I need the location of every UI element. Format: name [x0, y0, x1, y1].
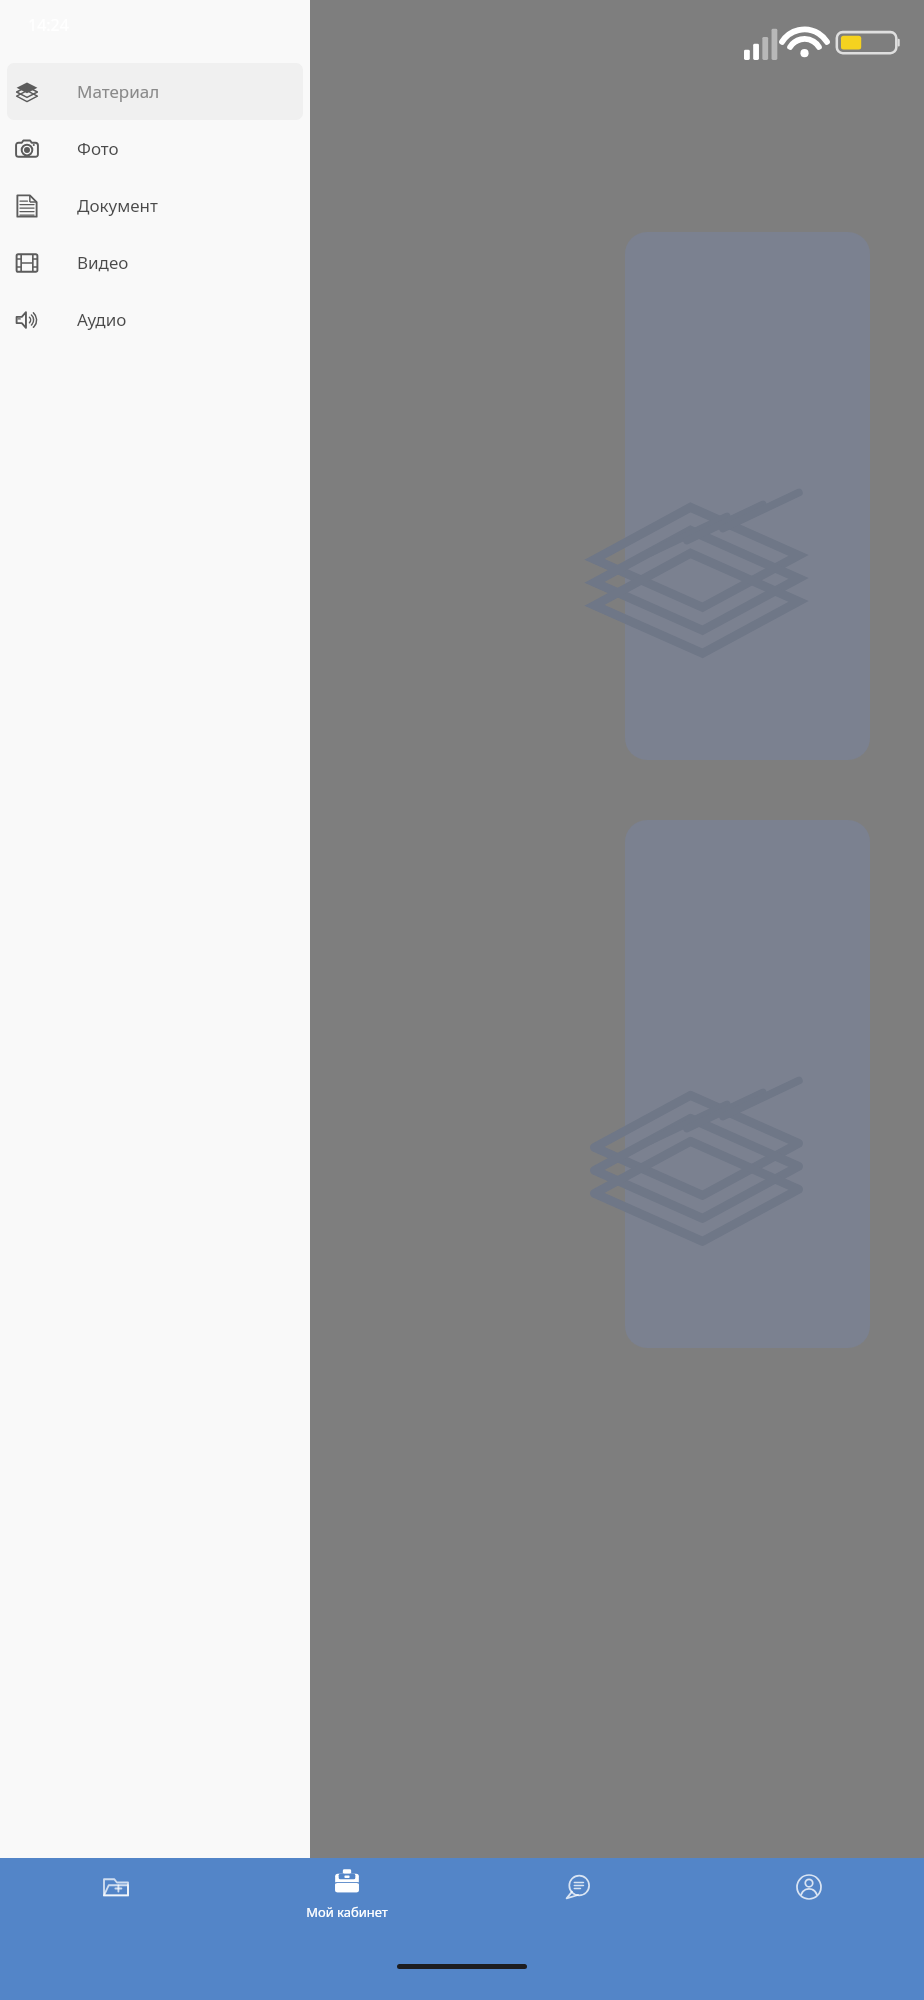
button[interactable]: Документы: [0, 1858, 231, 1942]
button[interactable]: Видео: [7, 234, 303, 291]
button[interactable]: Аудио: [7, 291, 303, 348]
staticText: Материал: [77, 80, 160, 103]
staticText: Видео: [77, 251, 129, 274]
button[interactable]: Сообщения: [462, 1858, 693, 1942]
button[interactable]: Материал: [7, 63, 303, 120]
button[interactable]: Документ: [7, 177, 303, 234]
button[interactable]: Профиль: [693, 1858, 924, 1942]
staticText: Документ: [77, 194, 158, 217]
staticText: Фото: [77, 137, 119, 160]
button[interactable]: Фото: [7, 120, 303, 177]
staticText: Аудио: [77, 308, 127, 331]
staticText: Мой кабинет: [306, 1903, 388, 1921]
button[interactable]: Мой кабинет: [231, 1858, 462, 1942]
